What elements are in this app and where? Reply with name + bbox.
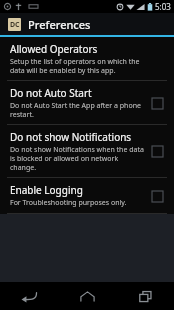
button[interactable]: Toggle Do not show Notifications xyxy=(146,140,168,162)
button[interactable]: Toggle Do not Auto Start xyxy=(146,92,168,114)
staticText: DC xyxy=(10,20,20,30)
staticText: For Troubleshooting purposes only. xyxy=(10,198,127,208)
button[interactable]: DC xyxy=(0,13,174,35)
staticText: Setup the list of operators on which the… xyxy=(10,57,146,75)
staticText: Enable Logging xyxy=(10,183,83,197)
button[interactable]: Toggle Enable Logging xyxy=(146,185,168,207)
staticText: Allowed Operators xyxy=(10,42,98,56)
button[interactable]: Back xyxy=(0,282,58,310)
button[interactable]: Do not Auto Start xyxy=(0,81,174,124)
staticText: Do not Auto Start the App after a phone … xyxy=(10,101,146,119)
button[interactable]: Home xyxy=(58,282,116,310)
staticText: Do not Auto Start xyxy=(10,86,92,100)
button[interactable]: Do not show Notifications xyxy=(0,125,174,177)
staticText: Do not show Notifications xyxy=(10,130,132,144)
staticText: Preferences xyxy=(28,17,91,32)
button[interactable]: Recent apps xyxy=(116,282,174,310)
staticText: 5:03 xyxy=(155,1,171,12)
button[interactable]: Allowed Operators xyxy=(0,37,174,80)
staticText: Do not show Notifications when the data … xyxy=(10,145,146,172)
button[interactable]: Enable Logging xyxy=(0,178,174,213)
